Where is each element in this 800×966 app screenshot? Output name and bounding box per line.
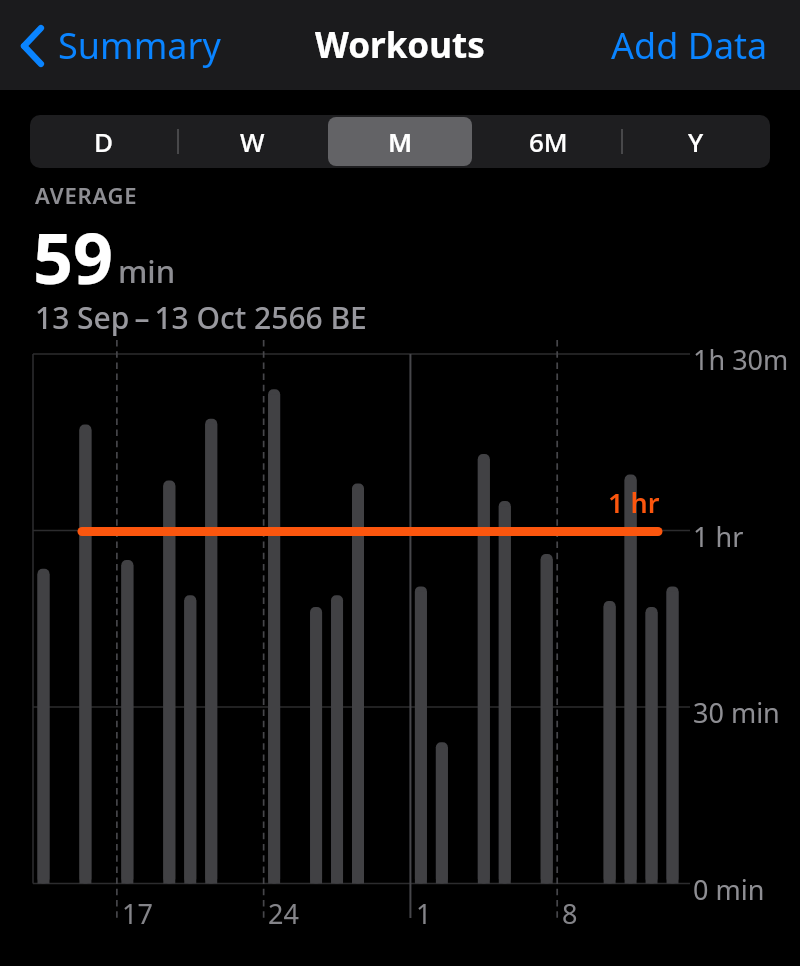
staticText: 1h 30m: [693, 341, 789, 378]
button[interactable]: Add Data: [611, 21, 768, 70]
staticText: 17: [122, 895, 153, 932]
staticText: 1 hr: [693, 518, 744, 555]
staticText: 6M: [529, 124, 568, 159]
staticText: W: [240, 124, 265, 159]
button[interactable]: Y: [624, 117, 768, 166]
staticText: M: [388, 124, 413, 159]
staticText: 24: [268, 895, 299, 932]
staticText: AVERAGE: [35, 180, 138, 210]
button[interactable]: D: [32, 117, 176, 166]
staticText: 59: [33, 209, 114, 304]
button[interactable]: Summary: [20, 21, 221, 70]
button[interactable]: W: [180, 117, 324, 166]
staticText: Summary: [58, 21, 221, 70]
staticText: 1 hr: [608, 484, 660, 521]
staticText: Y: [688, 124, 704, 159]
button[interactable]: 6M: [476, 117, 620, 166]
staticText: Add Data: [611, 21, 768, 70]
staticText: 1: [416, 895, 432, 932]
staticText: 8: [562, 895, 578, 932]
staticText: min: [118, 250, 176, 292]
button[interactable]: M: [328, 117, 472, 166]
staticText: 13 Sep – 13 Oct 2566 BE: [35, 297, 367, 338]
staticText: 0 min: [693, 871, 765, 908]
staticText: 30 min: [693, 694, 780, 731]
staticText: Workouts: [315, 21, 485, 69]
staticText: D: [94, 124, 114, 159]
